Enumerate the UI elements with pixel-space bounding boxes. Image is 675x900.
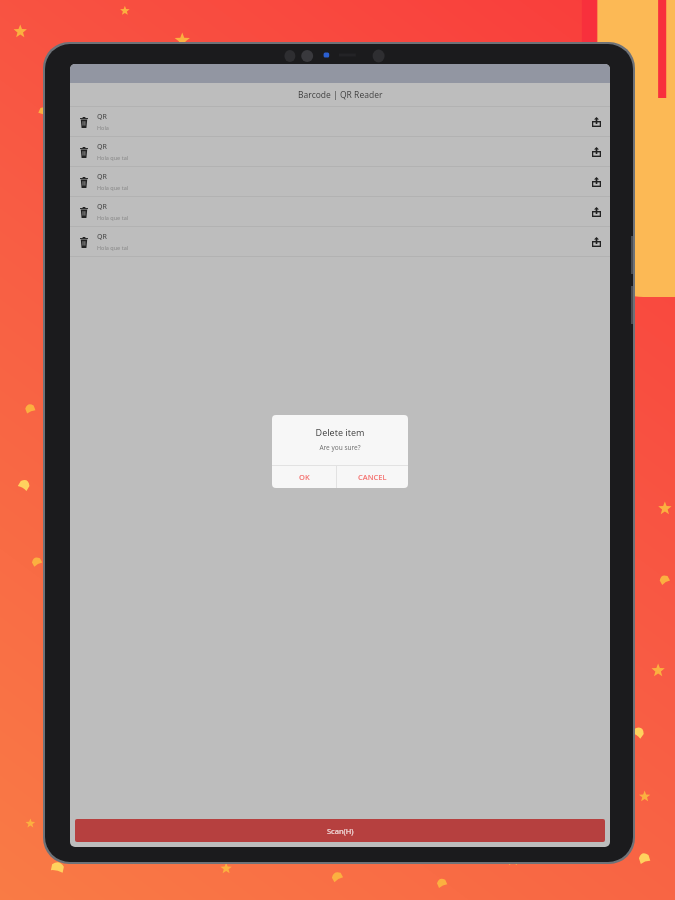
staticText: Hola que tal xyxy=(97,154,129,161)
staticText: QR xyxy=(97,172,107,182)
button[interactable]: Delete xyxy=(75,143,93,161)
staticText: Are you sure? xyxy=(272,443,408,452)
staticText: Scan(H) xyxy=(327,826,354,836)
button[interactable]: Share xyxy=(586,202,606,222)
staticText: Delete item xyxy=(272,426,408,438)
button[interactable]: Share xyxy=(586,172,606,192)
button[interactable]: Delete xyxy=(75,113,93,131)
button[interactable]: Delete xyxy=(75,203,93,221)
button[interactable]: CANCEL xyxy=(337,466,408,488)
staticText: QR xyxy=(97,112,107,122)
staticText: QR xyxy=(97,232,107,242)
staticText: QR xyxy=(97,202,107,212)
staticText: Hola que tal xyxy=(97,184,129,191)
button[interactable]: Delete xyxy=(70,197,610,226)
button[interactable]: Delete xyxy=(70,167,610,196)
button[interactable]: Scan(H) xyxy=(75,819,605,842)
button[interactable]: Delete xyxy=(70,227,610,256)
staticText: Hola que tal xyxy=(97,244,129,251)
button[interactable]: OK xyxy=(272,466,336,488)
button[interactable]: Delete xyxy=(75,233,93,251)
staticText: CANCEL xyxy=(358,472,387,482)
button[interactable]: Share xyxy=(586,142,606,162)
button[interactable]: Share xyxy=(586,232,606,252)
staticText: OK xyxy=(299,472,310,482)
staticText: Hola que tal xyxy=(97,214,129,221)
staticText: Barcode | QR Reader xyxy=(298,89,383,101)
staticText: Hola xyxy=(97,124,109,131)
staticText: QR xyxy=(97,142,107,152)
button[interactable]: Delete xyxy=(75,173,93,191)
button[interactable]: Share xyxy=(586,112,606,132)
button[interactable]: Delete xyxy=(70,137,610,166)
button[interactable]: Delete xyxy=(70,107,610,136)
